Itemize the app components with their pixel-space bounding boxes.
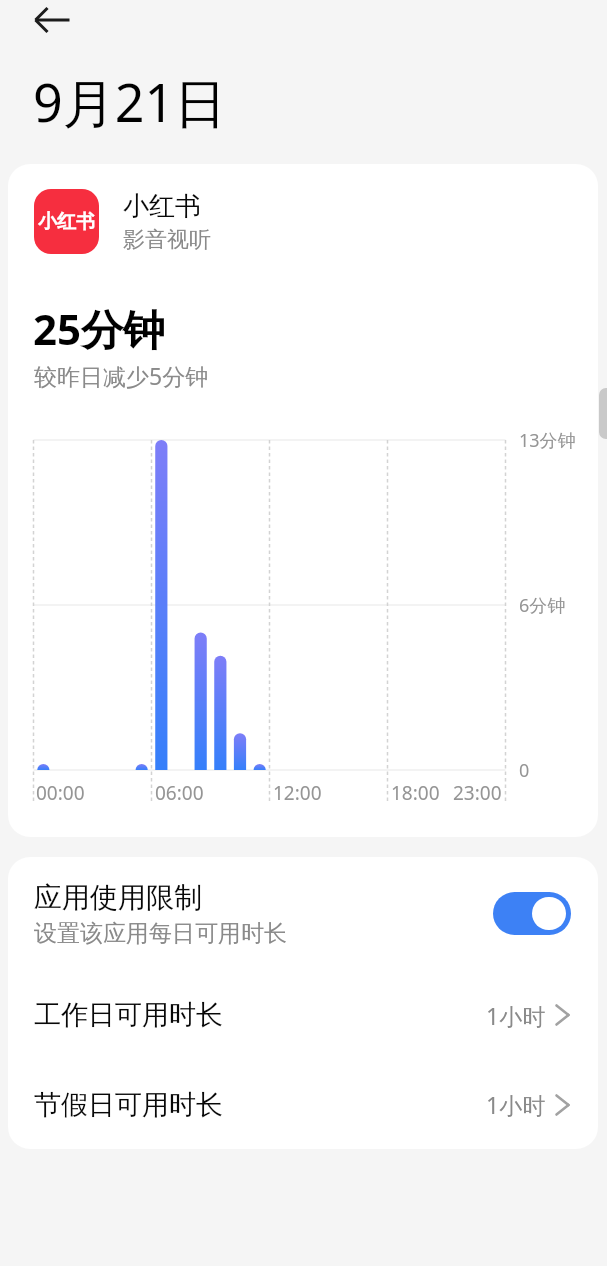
staticText: 小红书	[123, 190, 201, 223]
staticText: 影音视听	[123, 226, 211, 254]
button[interactable]: 节假日可用时长	[8, 1060, 598, 1149]
staticText: 9月21日	[33, 66, 227, 137]
staticText: 12:00	[273, 780, 322, 806]
button[interactable]: 应用使用限制	[8, 857, 598, 970]
staticText: 13分钟	[519, 428, 576, 453]
staticText: 6分钟	[519, 593, 566, 618]
staticText: 23:00	[453, 780, 502, 806]
staticText: 1小时	[486, 1000, 546, 1031]
staticText: 应用使用限制	[34, 880, 202, 915]
staticText: 1小时	[486, 1089, 546, 1120]
staticText: 0	[519, 758, 530, 783]
staticText: 设置该应用每日可用时长	[34, 919, 287, 948]
staticText: 00:00	[36, 780, 85, 806]
staticText: 06:00	[155, 780, 204, 806]
button[interactable]: 小红书	[34, 189, 334, 254]
button[interactable]: Back	[23, 0, 81, 40]
staticText: 25分钟	[33, 300, 166, 357]
button[interactable]: 工作日可用时长	[8, 970, 598, 1060]
staticText: 节假日可用时长	[34, 1088, 223, 1122]
staticText: 小红书	[38, 210, 95, 234]
staticText: 工作日可用时长	[34, 998, 223, 1032]
button[interactable]: Toggle app usage limit	[493, 892, 571, 935]
staticText: 较昨日减少5分钟	[34, 360, 209, 391]
staticText: 18:00	[391, 780, 440, 806]
